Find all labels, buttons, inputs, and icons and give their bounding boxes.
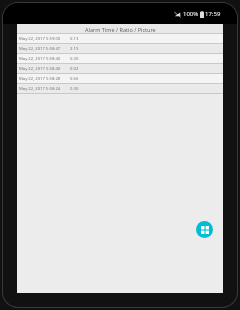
staticText: 2.15 bbox=[70, 46, 79, 52]
staticText: 0.13 bbox=[70, 36, 79, 42]
staticText: 0.30 bbox=[70, 56, 79, 62]
button[interactable]: May 22, 2017 5:58:40 PM bbox=[17, 54, 223, 64]
staticText: May 22, 2017 5:58:47 PM bbox=[19, 46, 67, 52]
button[interactable]: May 22, 2017 5:59:00 PM bbox=[17, 34, 223, 44]
staticText: May 22, 2017 5:58:40 PM bbox=[19, 56, 67, 62]
button[interactable]: Show pictures grid bbox=[196, 221, 213, 238]
staticText: 0.02 bbox=[70, 66, 79, 72]
staticText: 0.66 bbox=[70, 76, 79, 82]
button[interactable]: May 22, 2017 5:58:24 PM bbox=[17, 84, 223, 94]
staticText: 100% bbox=[183, 10, 199, 18]
staticText: May 22, 2017 5:58:28 PM bbox=[19, 76, 67, 82]
staticText: Alarm Time / Ratio / Picture bbox=[85, 26, 156, 33]
staticText: May 22, 2017 5:59:00 PM bbox=[19, 36, 67, 42]
button[interactable]: May 22, 2017 5:58:40 PM bbox=[17, 64, 223, 74]
staticText: May 22, 2017 5:58:40 PM bbox=[19, 66, 67, 72]
button[interactable]: May 22, 2017 5:58:28 PM bbox=[17, 74, 223, 84]
staticText: 0.30 bbox=[70, 86, 79, 92]
button[interactable]: May 22, 2017 5:58:47 PM bbox=[17, 44, 223, 54]
staticText: 17:59 bbox=[205, 10, 221, 18]
staticText: May 22, 2017 5:58:24 PM bbox=[19, 86, 67, 92]
